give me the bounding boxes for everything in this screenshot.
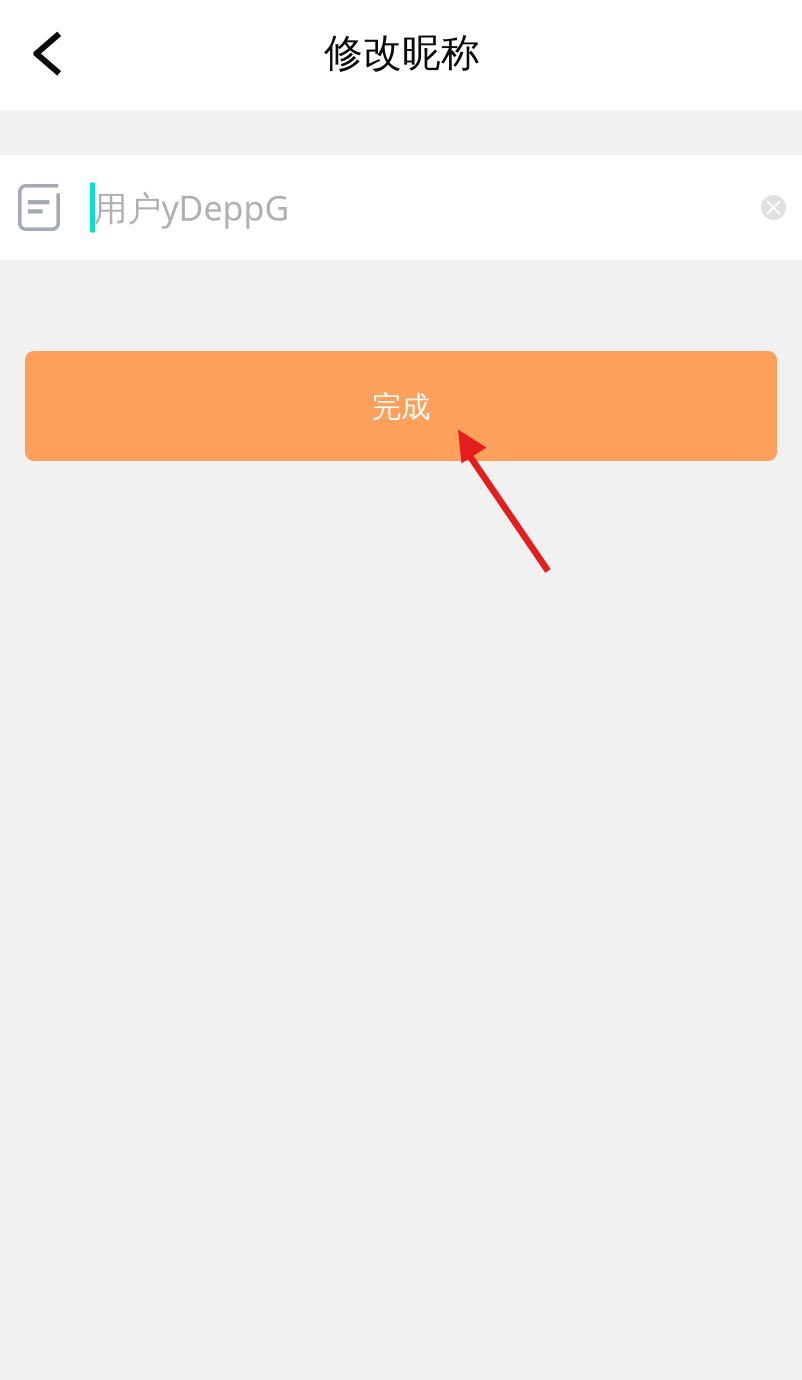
button[interactable]: Clear text [761,195,786,220]
button[interactable]: 完成 [25,351,777,461]
button[interactable]: Back [0,0,90,110]
button[interactable]: 用户yDeppG [18,155,761,260]
staticText: 完成 [372,389,430,425]
staticText: 用户yDeppG [93,184,289,231]
staticText: 修改昵称 [324,29,480,77]
